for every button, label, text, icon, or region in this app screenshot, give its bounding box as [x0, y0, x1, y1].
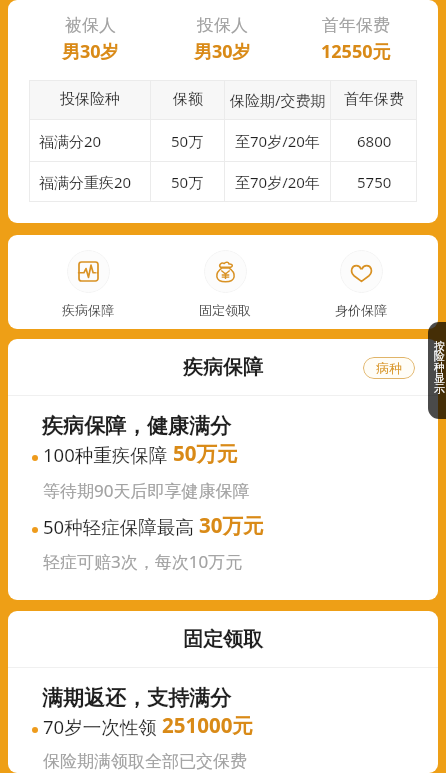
staticText: 首年保费 — [322, 15, 390, 36]
staticText: 保险期/交费期 — [230, 90, 326, 110]
staticText: 50万 — [171, 131, 204, 151]
staticText: 保额 — [173, 90, 203, 109]
staticText: 福满分重疾20 — [39, 172, 132, 192]
staticText: 固定领取 — [199, 302, 251, 318]
staticText: 至70岁/20年 — [235, 131, 320, 151]
button[interactable]: 固定领取 — [199, 250, 251, 318]
staticText: 固定领取 — [183, 627, 263, 652]
staticText: 保险期满领取全部已交保费 — [43, 751, 247, 772]
other: 身价保障 — [340, 250, 383, 293]
staticText: 福满分20 — [39, 131, 102, 151]
staticText: 男30岁 — [62, 39, 119, 64]
staticText: 70岁一次性领 — [43, 714, 157, 739]
staticText: 等待期90天后即享健康保障 — [43, 479, 250, 502]
staticText: 50万 — [171, 172, 204, 192]
staticText: 投保险种 — [60, 90, 120, 109]
button[interactable]: 疾病保障 — [62, 250, 114, 318]
staticText: 男30岁 — [194, 39, 251, 64]
other: 疾病保障 — [67, 250, 110, 293]
staticText: 疾病保障 — [62, 302, 114, 318]
staticText: 50万元 — [173, 439, 238, 467]
staticText: 100种重疾保障 — [43, 442, 168, 467]
staticText: 50种轻症保障最高 — [43, 514, 194, 539]
staticText: 至70岁/20年 — [235, 172, 320, 192]
staticText: 251000元 — [162, 711, 253, 739]
button[interactable]: 按险种显示 — [428, 322, 446, 419]
staticText: 投保人 — [197, 15, 248, 36]
staticText: 首年保费 — [344, 90, 404, 109]
staticText: 12550元 — [321, 39, 391, 64]
staticText: 轻症可赔3次，每次10万元 — [43, 550, 243, 573]
staticText: 30万元 — [199, 511, 264, 539]
staticText: 6800 — [357, 131, 392, 151]
other: 固定领取 — [204, 250, 247, 293]
staticText: 病种 — [376, 360, 402, 376]
staticText: 被保人 — [65, 15, 116, 36]
staticText: 满期返还，支持满分 — [42, 685, 231, 711]
staticText: 疾病保障，健康满分 — [42, 413, 231, 439]
staticText: 疾病保障 — [183, 355, 263, 380]
staticText: 按险种显示 — [434, 339, 445, 396]
button[interactable]: 身价保障 — [335, 250, 387, 318]
staticText: 身价保障 — [335, 302, 387, 318]
staticText: 5750 — [357, 172, 392, 192]
button[interactable]: 病种 — [363, 357, 415, 379]
